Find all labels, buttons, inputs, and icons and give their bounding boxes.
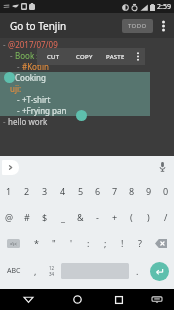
staticText: 12 (49, 265, 55, 271)
staticText: # (24, 211, 30, 223)
button[interactable]: =\< (0, 230, 27, 256)
staticText: @2017/07/09 (8, 39, 58, 50)
button[interactable]: 7 (106, 178, 123, 204)
staticText: : (87, 237, 90, 249)
staticText: Book store (15, 50, 56, 61)
button[interactable]: + (106, 204, 123, 230)
staticText: ( (130, 211, 133, 223)
staticText: - (3, 39, 8, 50)
button[interactable]: & (72, 204, 89, 230)
staticText: =\< (10, 241, 17, 247)
button[interactable]: @ (0, 204, 18, 230)
button[interactable]: TODO (122, 19, 153, 33)
staticText: - (96, 211, 99, 223)
staticText: ) (147, 211, 150, 223)
staticText: Go to Tenjin (10, 19, 67, 33)
staticText: @ (5, 211, 14, 223)
staticText: ' (70, 237, 73, 249)
button[interactable]: 2 (18, 178, 36, 204)
button[interactable]: 9 (140, 178, 157, 204)
staticText: 7 (112, 185, 118, 197)
button[interactable]: 1 (0, 178, 18, 204)
button[interactable]: _ (54, 204, 72, 230)
button[interactable]: ? (131, 230, 148, 256)
staticText: TODO (128, 22, 147, 30)
staticText: ? (138, 237, 142, 249)
staticText: - (10, 50, 15, 61)
staticText: 5 (78, 185, 84, 197)
button[interactable]: Expand suggestions (2, 160, 19, 175)
staticText: 2 (24, 185, 30, 197)
button[interactable]: - (89, 204, 106, 230)
button[interactable]: Hide keyboard (140, 289, 174, 310)
staticText: - (17, 94, 22, 105)
staticText: ABC (7, 266, 21, 276)
button[interactable]: Delete (148, 230, 174, 256)
button[interactable]: / (157, 204, 174, 230)
staticText: ; (104, 237, 107, 249)
button[interactable]: Voice input (155, 160, 169, 174)
staticText: & (77, 211, 84, 223)
staticText: . (136, 265, 139, 277)
button[interactable]: PASTE (100, 48, 131, 65)
staticText: / (164, 211, 168, 223)
button[interactable]: * (27, 230, 45, 256)
staticText: + (112, 211, 118, 223)
button[interactable]: CUT (37, 48, 69, 65)
staticText: 4 (60, 185, 66, 197)
staticText: COPY (76, 53, 93, 61)
staticText: " (52, 237, 56, 249)
staticText: uji: (10, 83, 22, 94)
button[interactable]: COPY (69, 48, 100, 65)
button[interactable]: ABC (0, 256, 27, 286)
staticText: 6 (95, 185, 101, 197)
button[interactable]: Selection start handle (4, 72, 15, 83)
staticText: Cooking (15, 72, 46, 83)
staticText: 3 (42, 185, 48, 197)
button[interactable]: More options (153, 13, 173, 38)
button[interactable]: Home (56, 289, 98, 310)
button[interactable]: More options (131, 48, 145, 65)
staticText: 9 (146, 185, 152, 197)
staticText: 2:59 (157, 2, 171, 12)
staticText: +Frying pan (22, 105, 67, 116)
staticText: - (17, 105, 22, 116)
button[interactable]: . (129, 256, 145, 286)
staticText: 34 (49, 271, 55, 277)
button[interactable]: ) (140, 204, 157, 230)
button[interactable]: Selection end handle (76, 110, 87, 121)
button[interactable]: 0 (157, 178, 174, 204)
button[interactable]: ' (63, 230, 80, 256)
button[interactable]: Numbers (43, 256, 61, 286)
button[interactable]: : (80, 230, 97, 256)
staticText: hello work (8, 116, 48, 127)
button[interactable]: , (27, 256, 43, 286)
button[interactable]: 4 (54, 178, 72, 204)
button[interactable]: " (45, 230, 63, 256)
staticText: _ (61, 211, 65, 223)
staticText: PASTE (106, 53, 125, 61)
button[interactable]: Back (0, 289, 56, 310)
staticText: , (34, 265, 37, 277)
button[interactable]: Recent apps (98, 289, 140, 310)
button[interactable]: 3 (36, 178, 54, 204)
button[interactable]: 6 (89, 178, 106, 204)
button[interactable]: Enter (145, 256, 174, 286)
button[interactable]: $ (36, 204, 54, 230)
staticText: * (34, 237, 39, 249)
button[interactable]: ! (114, 230, 131, 256)
staticText: 0 (163, 185, 169, 197)
staticText: 1 (6, 185, 12, 197)
staticText: ! (121, 237, 124, 249)
button[interactable]: ( (123, 204, 140, 230)
button[interactable]: 8 (123, 178, 140, 204)
staticText: - (10, 72, 15, 83)
staticText: #Kotlin (22, 61, 49, 72)
staticText: - (17, 61, 22, 72)
button[interactable]: 5 (72, 178, 89, 204)
staticText: +T-shirt (22, 94, 51, 105)
button[interactable]: ; (97, 230, 114, 256)
staticText: $ (42, 211, 48, 223)
button[interactable]: # (18, 204, 36, 230)
